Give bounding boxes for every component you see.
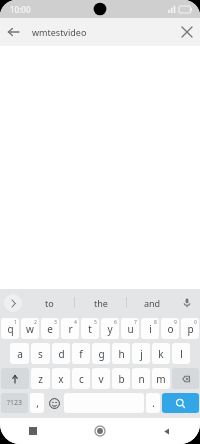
button[interactable]: Home <box>66 418 133 444</box>
button[interactable]: Clear <box>174 19 200 45</box>
button[interactable]: p <box>181 318 199 339</box>
button[interactable]: Expand <box>4 294 22 312</box>
staticText: d <box>58 347 65 361</box>
staticText: x <box>58 372 64 386</box>
button[interactable]: Back <box>133 418 200 444</box>
staticText: m <box>156 372 166 386</box>
staticText: w <box>26 322 34 336</box>
staticText: t <box>88 322 92 336</box>
staticText: 1 <box>14 319 17 326</box>
button[interactable]: y <box>101 318 119 339</box>
staticText: p <box>187 322 194 336</box>
button[interactable]: q <box>1 318 19 339</box>
staticText: s <box>38 347 43 361</box>
staticText: ?123 <box>7 398 23 408</box>
staticText: b <box>118 372 125 386</box>
staticText: a <box>17 347 23 361</box>
button[interactable]: r <box>61 318 79 339</box>
staticText: y <box>107 322 113 336</box>
button[interactable]: v <box>92 368 110 389</box>
staticText: 2 <box>34 319 37 326</box>
staticText: o <box>167 322 174 336</box>
button[interactable]: b <box>112 368 130 389</box>
staticText: 9 <box>174 319 177 326</box>
staticText: to <box>45 297 54 309</box>
button[interactable]: Backspace <box>172 368 199 389</box>
button[interactable]: . <box>146 393 160 413</box>
staticText: and <box>144 297 161 309</box>
staticText: g <box>98 347 105 361</box>
staticText: l <box>180 347 183 361</box>
staticText: wmtestvideo <box>32 26 87 38</box>
staticText: z <box>38 372 43 386</box>
button[interactable]: a <box>10 343 29 364</box>
button[interactable]: Search <box>162 393 199 413</box>
button[interactable]: Back <box>0 19 26 45</box>
button[interactable]: w <box>21 318 39 339</box>
staticText: f <box>79 347 83 361</box>
staticText: n <box>138 372 145 386</box>
staticText: u <box>127 322 134 336</box>
staticText: 5 <box>94 319 97 326</box>
staticText: 10:00 <box>10 4 31 15</box>
staticText: 8 <box>154 319 157 326</box>
staticText: 4 <box>74 319 77 326</box>
staticText: q <box>7 322 14 336</box>
staticText: c <box>79 372 84 386</box>
button[interactable]: n <box>132 368 150 389</box>
button[interactable]: s <box>31 343 50 364</box>
staticText: e <box>47 322 53 336</box>
staticText: k <box>158 347 164 361</box>
button[interactable]: z <box>31 368 50 389</box>
button[interactable]: m <box>152 368 170 389</box>
staticText: 0 <box>194 319 197 326</box>
button[interactable]: to <box>24 289 74 316</box>
button[interactable]: ?123 <box>1 393 28 413</box>
button[interactable]: o <box>161 318 179 339</box>
button[interactable]: t <box>81 318 99 339</box>
staticText: j <box>140 347 143 361</box>
button[interactable]: and <box>127 289 178 316</box>
staticText: i <box>149 322 152 336</box>
button[interactable]: the <box>75 289 126 316</box>
button[interactable]: , <box>30 393 44 413</box>
staticText: 3 <box>54 319 57 326</box>
button[interactable]: x <box>52 368 70 389</box>
button[interactable]: e <box>41 318 59 339</box>
staticText: . <box>152 396 155 410</box>
button[interactable]: g <box>92 343 110 364</box>
button[interactable]: Shift <box>1 368 29 389</box>
staticText: , <box>36 396 39 410</box>
button[interactable]: Voice input <box>178 294 196 312</box>
button[interactable]: k <box>152 343 170 364</box>
staticText: v <box>98 372 104 386</box>
staticText: r <box>68 322 73 336</box>
staticText: h <box>118 347 125 361</box>
staticText: the <box>94 297 108 309</box>
button[interactable]: Emoji <box>46 393 62 413</box>
button[interactable]: u <box>121 318 139 339</box>
button[interactable]: c <box>72 368 90 389</box>
button[interactable]: h <box>112 343 130 364</box>
button[interactable]: f <box>72 343 90 364</box>
button[interactable]: j <box>132 343 150 364</box>
button[interactable]: d <box>52 343 70 364</box>
staticText: 7 <box>134 319 137 326</box>
button[interactable]: l <box>172 343 190 364</box>
button[interactable]: i <box>141 318 159 339</box>
staticText: 6 <box>114 319 117 326</box>
button[interactable]: Recents <box>0 418 66 444</box>
